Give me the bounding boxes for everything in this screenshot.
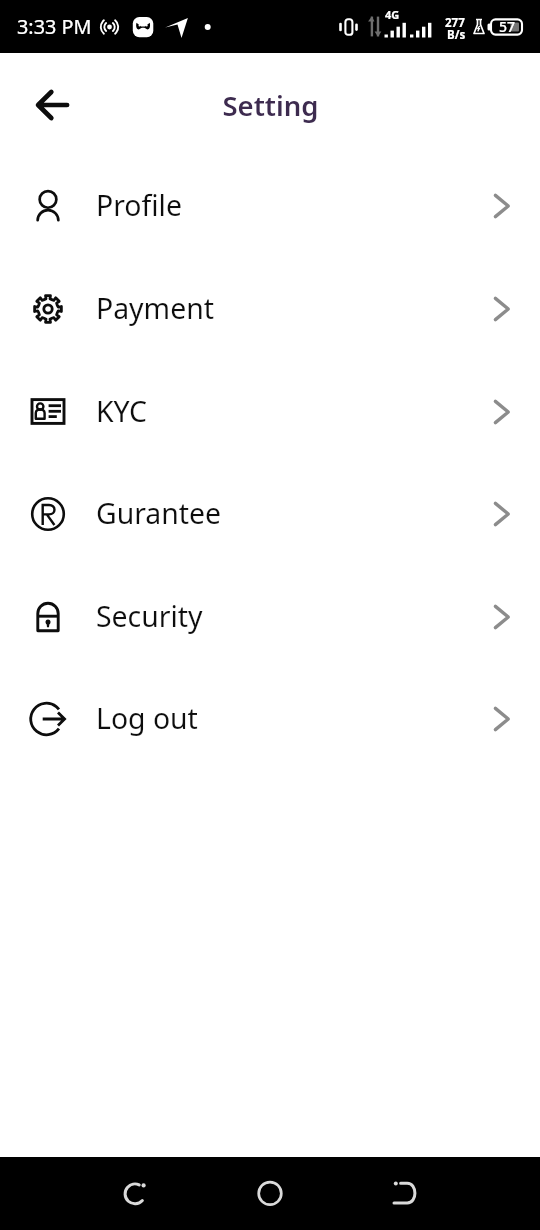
staticText: Payment — [96, 289, 214, 328]
staticText: 277 — [445, 15, 465, 31]
button[interactable]: Profile — [0, 154, 540, 257]
staticText: 3:33 PM — [17, 13, 92, 40]
button[interactable]: Back — [374, 1163, 434, 1223]
staticText: 4G — [385, 7, 400, 22]
staticText: Log out — [96, 699, 198, 738]
staticText: KYC — [96, 392, 148, 431]
staticText: Profile — [96, 186, 182, 225]
button[interactable]: KYC — [0, 360, 540, 463]
staticText: Gurantee — [96, 494, 222, 533]
staticText: Security — [96, 597, 203, 636]
button[interactable]: Recent apps — [105, 1163, 165, 1223]
button[interactable]: Security — [0, 565, 540, 668]
staticText: B/s — [447, 27, 466, 43]
button[interactable]: Log out — [0, 667, 540, 770]
button[interactable]: Home — [240, 1163, 300, 1223]
staticText: 57 — [499, 17, 516, 36]
button[interactable]: Payment — [0, 257, 540, 360]
staticText: Setting — [222, 87, 319, 124]
button[interactable]: Back — [20, 73, 84, 137]
button[interactable]: Gurantee — [0, 462, 540, 565]
